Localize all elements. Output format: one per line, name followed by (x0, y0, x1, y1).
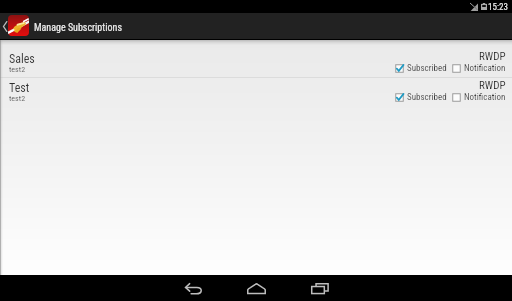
button[interactable]: Notification (452, 63, 506, 74)
button[interactable]: Subscribed (395, 92, 447, 103)
staticText: Subscribed (407, 63, 447, 74)
button[interactable]: Recent apps (310, 275, 329, 301)
staticText: test2 (9, 94, 26, 103)
button[interactable]: Subscribed (395, 63, 447, 74)
staticText: Sales (9, 52, 35, 66)
staticText: Test (9, 81, 30, 95)
button[interactable]: Test (0, 77, 512, 106)
staticText: Subscribed (407, 92, 447, 103)
staticText: 15:23 (488, 2, 508, 13)
staticText: test2 (9, 65, 26, 74)
button[interactable]: Sales (0, 48, 512, 77)
button[interactable]: Back (184, 275, 203, 301)
button[interactable]: Notification (452, 92, 506, 103)
staticText: RWDP (479, 79, 506, 92)
button[interactable]: Home (247, 275, 266, 301)
staticText: Notification (464, 63, 506, 74)
staticText: RWDP (479, 50, 506, 63)
staticText: Manage Subscriptions (34, 22, 122, 34)
button[interactable]: Navigate up (1, 13, 9, 39)
staticText: Notification (464, 92, 506, 103)
